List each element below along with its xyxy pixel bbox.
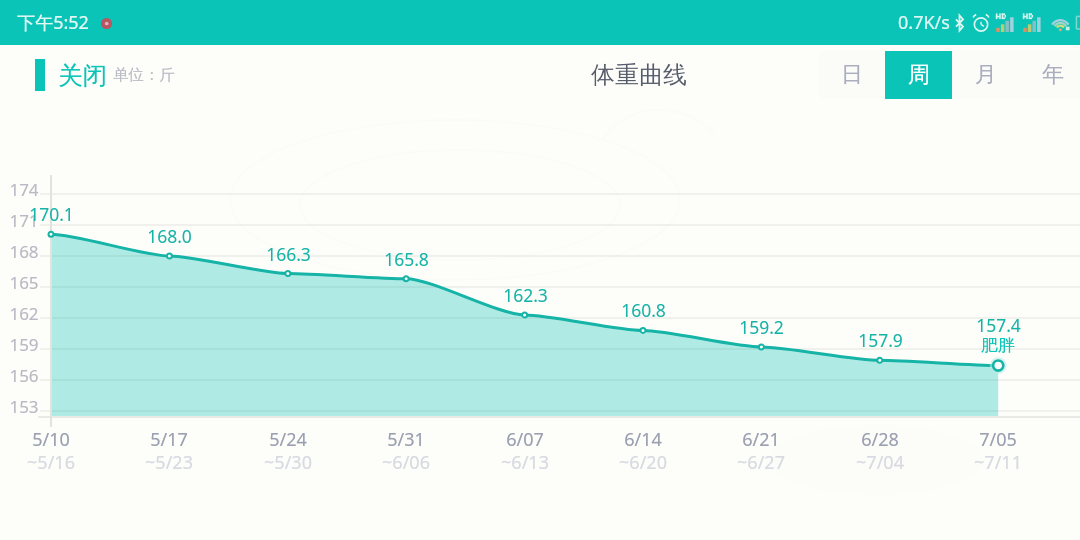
staticText: 160.8	[621, 298, 666, 322]
staticText: 6/14	[624, 427, 662, 452]
staticText: 单位：斤	[113, 65, 175, 85]
staticText: 下午5:52	[17, 10, 89, 35]
staticText: ~5/23	[145, 450, 193, 475]
staticText: 体重曲线	[591, 60, 687, 90]
staticText: 165.8	[384, 247, 429, 271]
staticText: ~6/20	[619, 450, 667, 475]
staticText: 年	[1042, 61, 1064, 89]
staticText: 171	[9, 209, 39, 232]
staticText: 168.0	[147, 224, 192, 248]
staticText: ~6/27	[737, 450, 785, 475]
button[interactable]: 关闭	[30, 52, 113, 98]
staticText: 159	[9, 333, 39, 356]
staticText: 162.3	[503, 283, 548, 307]
other: Battery	[1074, 13, 1080, 32]
staticText: ~6/06	[382, 450, 430, 475]
staticText: 170.1	[29, 202, 74, 226]
staticText: 5/31	[387, 427, 425, 452]
other: Bluetooth	[954, 13, 965, 33]
other: Wi-Fi	[1050, 13, 1072, 32]
other: SIM 2 signal, HD voice	[1022, 13, 1043, 32]
button[interactable]: 月	[952, 51, 1019, 99]
staticText: 周	[908, 61, 930, 89]
other: Alarm	[972, 14, 990, 32]
staticText: 168	[9, 240, 39, 263]
staticText: 157.4	[976, 313, 1021, 337]
staticText: ~7/11	[974, 450, 1022, 475]
staticText: ~5/16	[27, 450, 75, 475]
staticText: 162	[9, 302, 39, 325]
button[interactable]: 日	[818, 51, 885, 99]
staticText: 156	[9, 364, 39, 387]
staticText: 166.3	[266, 242, 311, 266]
staticText: ~5/30	[264, 450, 312, 475]
staticText: 6/28	[861, 427, 899, 452]
button[interactable]: 周	[885, 51, 952, 99]
staticText: ~7/04	[856, 450, 904, 475]
staticText: 157.9	[858, 328, 903, 352]
staticText: 0.7K/s	[898, 10, 950, 35]
staticText: 7/05	[979, 427, 1017, 452]
staticText: ~6/13	[501, 450, 549, 475]
staticText: 6/21	[742, 427, 780, 452]
staticText: 月	[975, 61, 997, 89]
staticText: 5/17	[150, 427, 188, 452]
staticText: 159.2	[739, 315, 784, 339]
button[interactable]: 年	[1019, 51, 1080, 99]
staticText: 153	[9, 395, 39, 418]
staticText: 6/07	[506, 427, 544, 452]
other: SIM 1 signal, HD voice	[995, 13, 1016, 32]
staticText: 肥胖	[981, 335, 1015, 356]
staticText: 5/10	[32, 427, 70, 452]
staticText: 165	[9, 271, 39, 294]
staticText: 关闭	[58, 60, 107, 91]
staticText: 日	[841, 61, 863, 89]
staticText: 5/24	[269, 427, 307, 452]
staticText: 174	[9, 178, 39, 201]
